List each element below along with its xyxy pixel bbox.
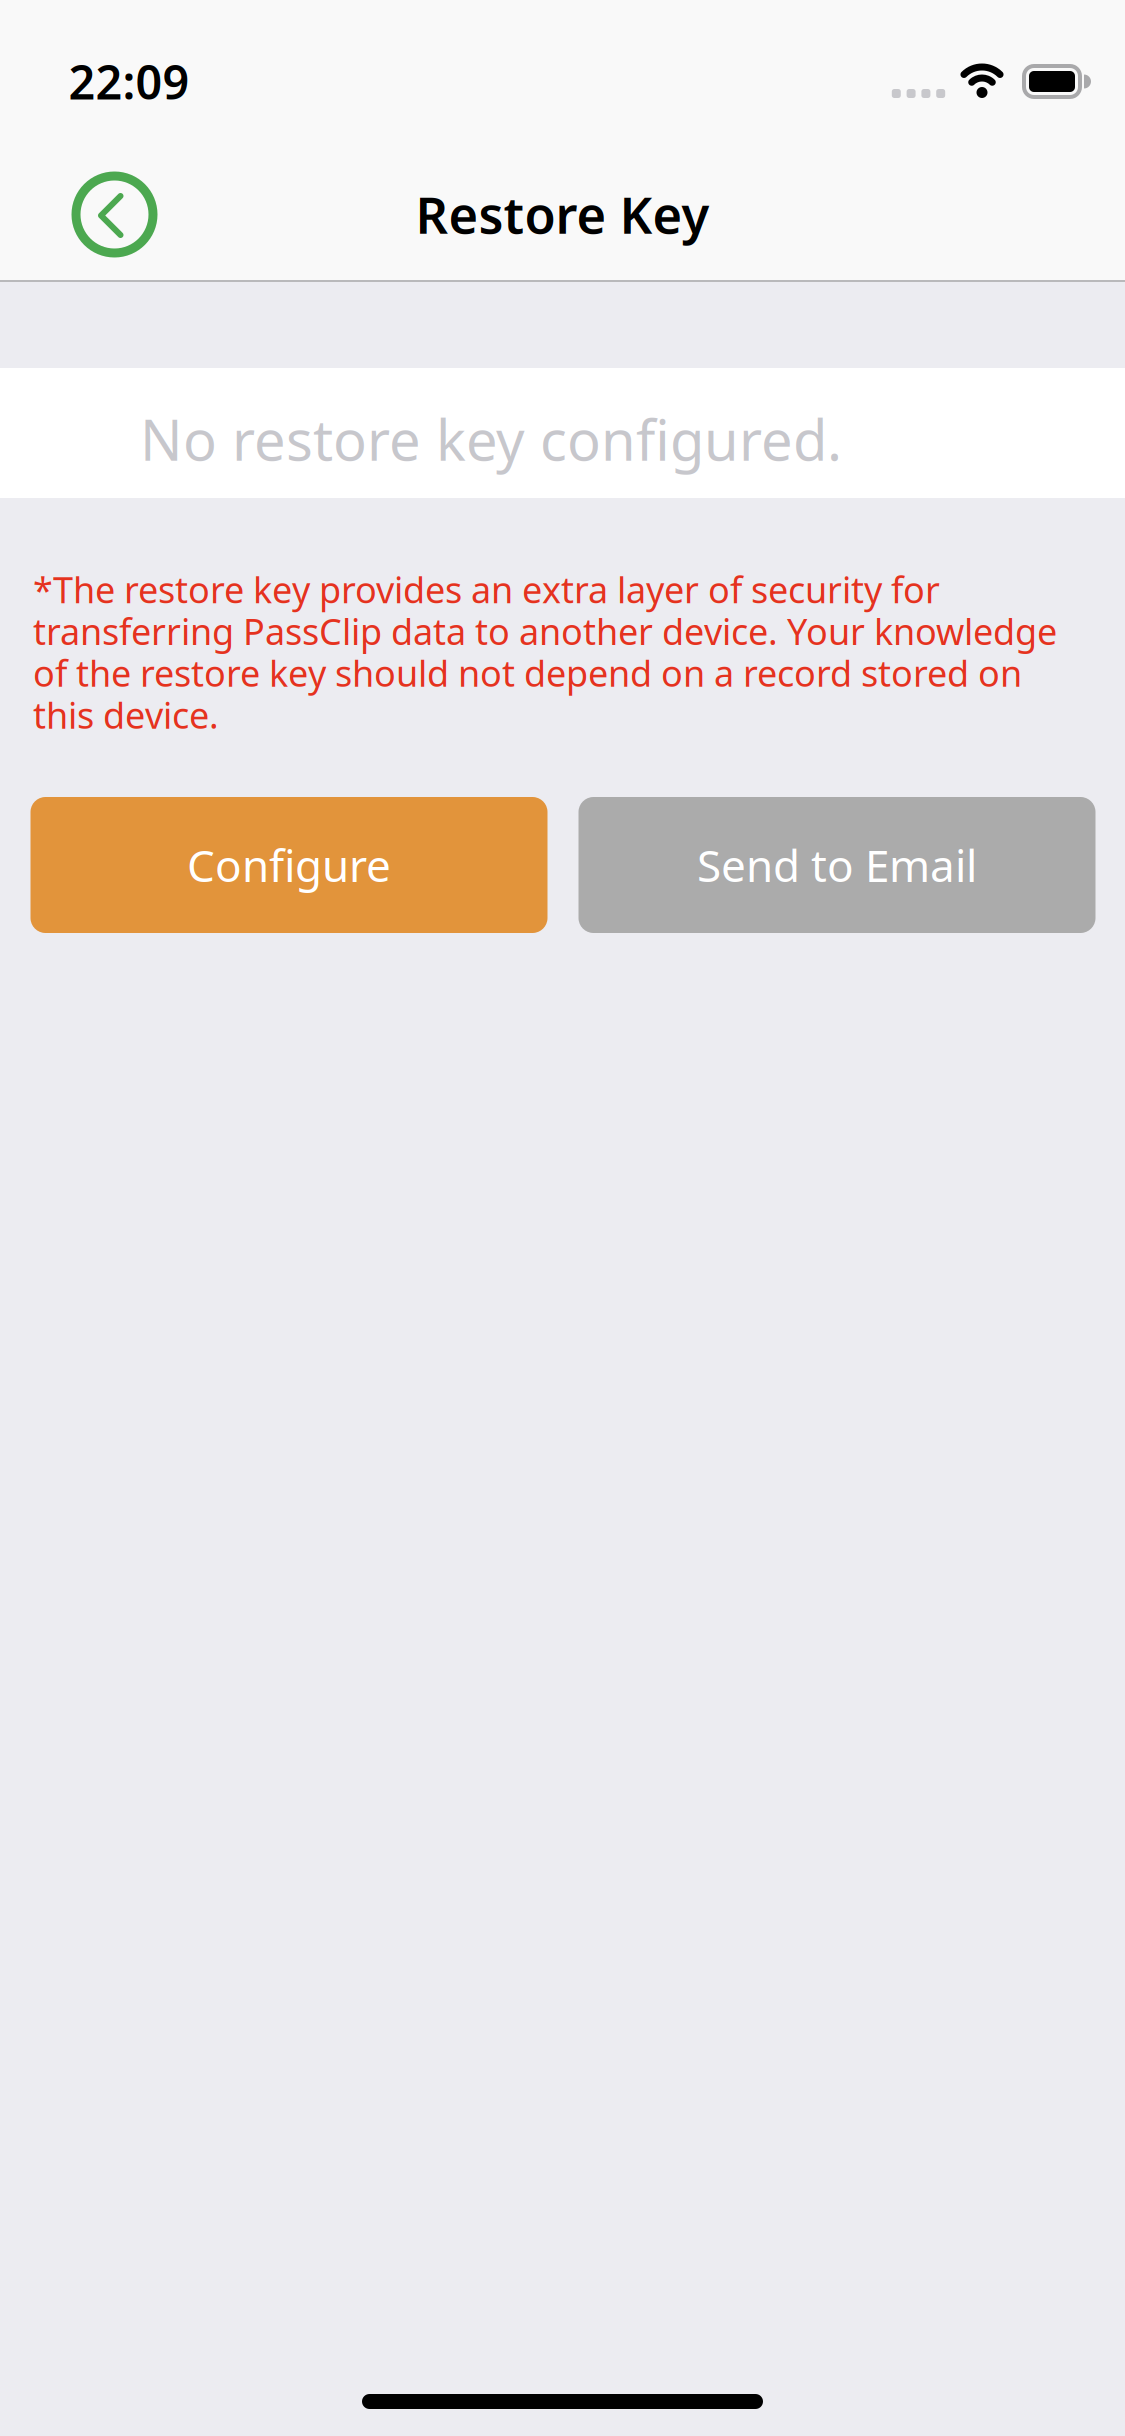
staticText: Restore Key	[415, 180, 709, 248]
staticText: 22:09	[68, 50, 189, 112]
button[interactable]: Send to Email	[578, 797, 1095, 933]
staticText: No restore key configured.	[140, 402, 842, 476]
staticText: Send to Email	[697, 836, 977, 894]
staticText: *The restore key provides an extra layer…	[33, 565, 1057, 739]
staticText: Configure	[187, 836, 391, 894]
button[interactable]: Configure	[30, 797, 547, 933]
button[interactable]: Restore key text field	[0, 368, 1125, 498]
button[interactable]: Back	[71, 171, 157, 257]
